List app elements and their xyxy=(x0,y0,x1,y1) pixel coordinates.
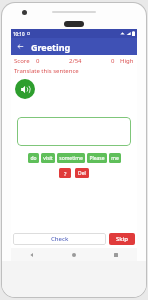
button[interactable]: Del xyxy=(75,168,89,178)
button[interactable]: Back xyxy=(11,248,53,261)
staticText: Del xyxy=(78,170,86,177)
staticText: do xyxy=(30,155,37,162)
button[interactable]: Check xyxy=(13,233,106,245)
staticText: Greeting xyxy=(31,41,71,53)
button[interactable]: Play audio xyxy=(15,79,35,99)
staticText: 2/54 xyxy=(69,57,82,65)
staticText: sometime xyxy=(59,155,83,162)
button[interactable]: Please xyxy=(87,153,107,163)
button[interactable]: sometime xyxy=(57,153,85,163)
button[interactable]: Back xyxy=(14,40,27,53)
button[interactable]: Recent apps xyxy=(95,248,137,261)
button[interactable]: Skip xyxy=(109,233,135,245)
staticText: Translate this sentence xyxy=(14,67,79,75)
staticText: Check xyxy=(51,235,69,243)
staticText: 0 xyxy=(36,57,40,65)
button[interactable]: me xyxy=(109,153,121,163)
staticText: High xyxy=(120,57,134,65)
staticText: Score xyxy=(14,57,30,65)
button[interactable]: Home xyxy=(53,248,95,261)
staticText: 0 xyxy=(111,57,115,65)
staticText: Please xyxy=(89,155,105,162)
button[interactable]: ? xyxy=(59,168,71,178)
staticText: me xyxy=(111,155,119,162)
button[interactable]: visit xyxy=(41,153,55,163)
button[interactable] xyxy=(17,117,131,146)
staticText: visit xyxy=(43,155,53,162)
staticText: ? xyxy=(64,170,67,177)
button[interactable]: do xyxy=(28,153,39,163)
staticText: Skip xyxy=(116,235,128,243)
staticText: 10:10 xyxy=(13,31,25,37)
